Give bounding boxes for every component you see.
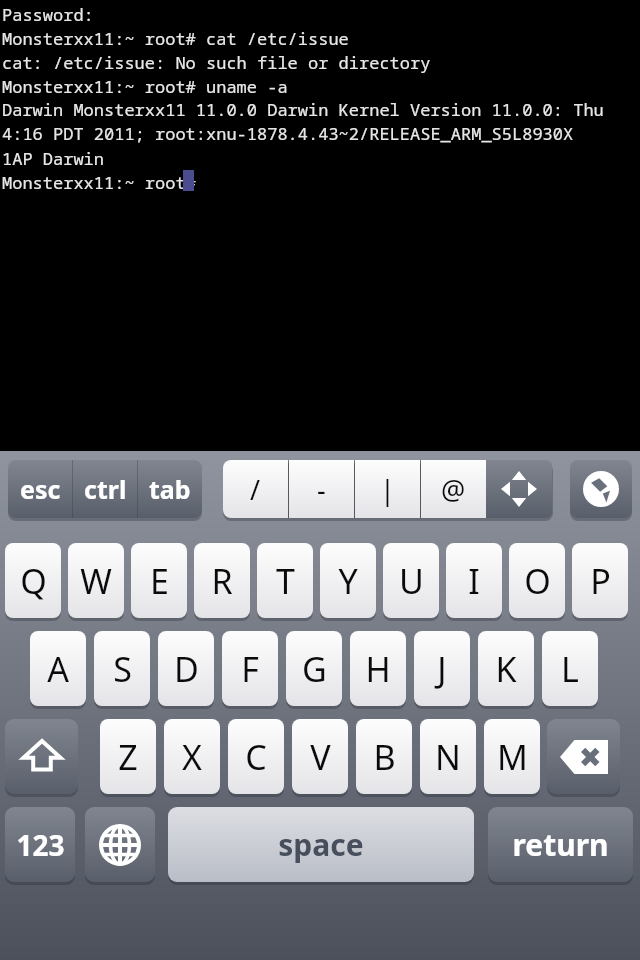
button[interactable]: A <box>30 631 86 706</box>
staticText: Password: <box>2 3 94 26</box>
staticText: U <box>399 558 424 604</box>
button[interactable]: L <box>542 631 598 706</box>
staticText: cat: /etc/issue: No such file or directo… <box>2 51 431 74</box>
staticText: N <box>435 734 461 780</box>
button[interactable]: H <box>350 631 406 706</box>
staticText: tab <box>149 472 191 506</box>
staticText: A <box>47 646 69 692</box>
button[interactable]: / <box>223 460 288 518</box>
button[interactable]: Arrow keys <box>486 460 552 518</box>
staticText: | <box>380 471 395 508</box>
button[interactable]: M <box>484 719 540 794</box>
staticText: 123 <box>16 826 65 864</box>
button[interactable]: B <box>356 719 412 794</box>
staticText: / <box>250 471 261 508</box>
button[interactable]: space <box>168 807 474 882</box>
staticText: 4:16 PDT 2011; root:xnu-1878.4.43~2/RELE… <box>2 122 640 146</box>
button[interactable]: - <box>289 460 354 518</box>
staticText: M <box>497 734 528 780</box>
staticText: return <box>512 824 609 865</box>
staticText: Monsterxx11:~ root# uname -a <box>2 75 288 98</box>
button[interactable]: E <box>131 543 187 618</box>
staticText: I <box>468 558 480 604</box>
button[interactable]: esc <box>8 460 72 518</box>
button[interactable]: ctrl <box>73 460 137 518</box>
button[interactable]: Switch keyboard <box>570 460 632 518</box>
button[interactable]: 123 <box>5 807 75 882</box>
button[interactable]: N <box>420 719 476 794</box>
button[interactable]: tab <box>138 460 202 518</box>
staticText: W <box>80 558 112 604</box>
staticText: Monsterxx11:~ root# cat /etc/issue <box>2 27 349 50</box>
button[interactable]: S <box>94 631 150 706</box>
staticText: E <box>150 558 169 604</box>
button[interactable]: Shift <box>5 719 78 794</box>
staticText: O <box>524 558 551 604</box>
staticText: C <box>245 734 267 780</box>
staticText: space <box>278 824 364 865</box>
staticText: D <box>174 646 199 692</box>
staticText: T <box>276 558 295 604</box>
button[interactable]: U <box>383 543 439 618</box>
staticText: R <box>211 558 233 604</box>
staticText: Q <box>20 558 47 604</box>
button[interactable]: C <box>228 719 284 794</box>
staticText: P <box>590 558 611 604</box>
button[interactable]: @ <box>421 460 486 518</box>
button[interactable]: W <box>68 543 124 618</box>
button[interactable]: Switch keyboard <box>85 807 155 882</box>
button[interactable]: I <box>446 543 502 618</box>
staticText: G <box>302 646 327 692</box>
staticText: B <box>373 734 396 780</box>
staticText: S <box>113 646 132 692</box>
staticText: F <box>241 646 259 692</box>
button[interactable]: F <box>222 631 278 706</box>
button[interactable]: | <box>355 460 420 518</box>
button[interactable]: Q <box>5 543 61 618</box>
staticText: J <box>437 646 447 692</box>
staticText: Z <box>118 734 138 780</box>
staticText: H <box>365 646 391 692</box>
staticText: 1AP Darwin <box>2 147 104 170</box>
button[interactable]: Z <box>100 719 156 794</box>
staticText: - <box>317 471 326 508</box>
button[interactable]: X <box>164 719 220 794</box>
button[interactable]: T <box>257 543 313 618</box>
button[interactable]: P <box>572 543 628 618</box>
button[interactable]: R <box>194 543 250 618</box>
staticText: @ <box>441 471 466 508</box>
button[interactable]: G <box>286 631 342 706</box>
button[interactable]: Backspace <box>547 719 620 794</box>
staticText: L <box>561 646 579 692</box>
staticText: V <box>310 734 331 780</box>
staticText: esc <box>20 472 61 506</box>
button[interactable]: Y <box>320 543 376 618</box>
button[interactable]: O <box>509 543 565 618</box>
staticText: ctrl <box>84 472 127 506</box>
staticText: K <box>495 646 517 692</box>
staticText: Darwin Monsterxx11 11.0.0 Darwin Kernel … <box>2 98 640 122</box>
staticText: Y <box>338 558 358 604</box>
button[interactable]: return <box>488 807 633 882</box>
button[interactable]: K <box>478 631 534 706</box>
button[interactable]: J <box>414 631 470 706</box>
button[interactable]: D <box>158 631 214 706</box>
staticText: Monsterxx11:~ root# <box>2 171 206 194</box>
button[interactable]: V <box>292 719 348 794</box>
staticText: X <box>182 734 202 780</box>
